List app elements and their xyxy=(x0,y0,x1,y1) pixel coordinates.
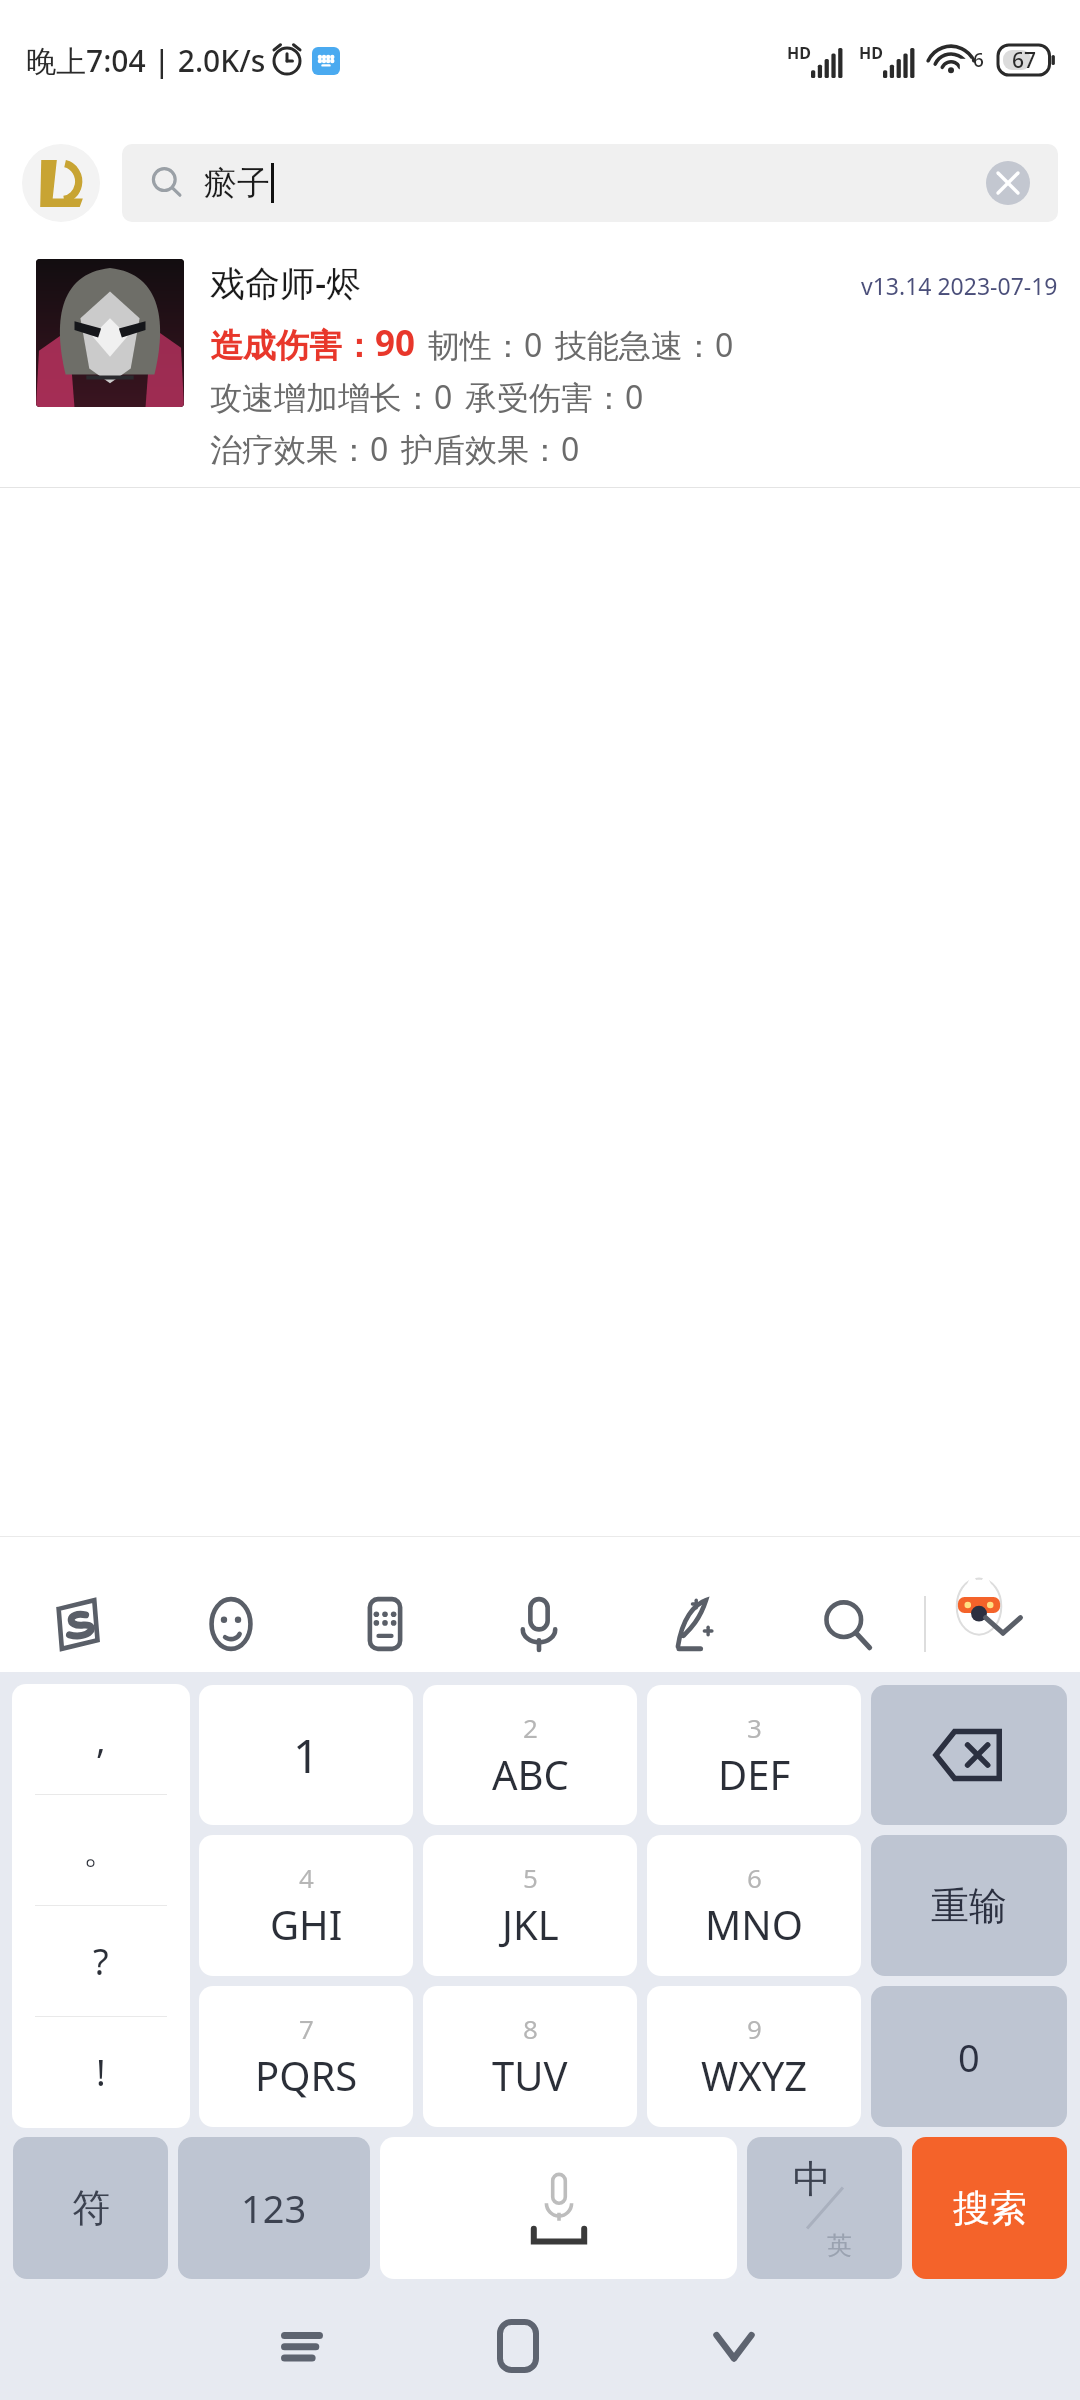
button[interactable]: 瘀子 xyxy=(122,144,1058,222)
staticText: 6 xyxy=(973,47,984,73)
staticText: v13.14 2023-07-19 xyxy=(861,270,1058,301)
button[interactable]: Search xyxy=(770,1588,924,1660)
button[interactable]: 9 xyxy=(647,1986,861,2127)
button[interactable]: 0 xyxy=(871,1986,1067,2127)
staticText: ! xyxy=(96,2048,106,2097)
staticText: 1 xyxy=(293,1724,320,1787)
staticText: 符 xyxy=(72,2184,110,2232)
staticText: 67 xyxy=(1012,46,1037,75)
button[interactable]: Keyboard layout xyxy=(308,1588,462,1660)
staticText: ? xyxy=(93,1937,109,1986)
staticText: TUV xyxy=(492,2048,568,2102)
staticText: 6 xyxy=(747,1860,762,1895)
staticText: 治疗效果：0 xyxy=(210,427,389,471)
button[interactable]: 8 xyxy=(423,1986,637,2127)
button[interactable]: 搜索 xyxy=(912,2137,1067,2279)
button[interactable]: Profile xyxy=(22,144,100,222)
staticText: 中 xyxy=(793,2155,831,2203)
button[interactable]: Space xyxy=(380,2137,737,2279)
button[interactable]: 1 xyxy=(199,1685,413,1825)
staticText: MNO xyxy=(705,1897,803,1951)
staticText: 重输 xyxy=(931,1882,1007,1930)
button[interactable]: 2 xyxy=(423,1685,637,1825)
staticText: 3 xyxy=(747,1710,762,1745)
button[interactable]: Back xyxy=(626,2292,842,2400)
button[interactable]: 5 xyxy=(423,1835,637,1976)
staticText: 2 xyxy=(523,1710,538,1745)
button[interactable]: Home xyxy=(410,2292,626,2400)
button[interactable]: 6 xyxy=(647,1835,861,1976)
staticText: 护盾效果：0 xyxy=(401,427,580,471)
button[interactable]: 7 xyxy=(199,1986,413,2127)
staticText: 晚上7:04 | 2.0K/s xyxy=(26,40,266,81)
staticText: ABC xyxy=(492,1747,569,1801)
staticText: GHI xyxy=(270,1897,343,1951)
button[interactable]: 4 xyxy=(199,1835,413,1976)
button[interactable]: Hide keyboard xyxy=(926,1588,1080,1660)
staticText: 8 xyxy=(523,2011,538,2046)
button[interactable]: 3 xyxy=(647,1685,861,1825)
staticText: 技能急速：0 xyxy=(555,323,734,367)
staticText: 7 xyxy=(299,2011,314,2046)
button[interactable]: 符 xyxy=(13,2137,168,2279)
staticText: 攻速增加增长：0 xyxy=(210,375,453,419)
staticText: 搜索 xyxy=(953,2185,1027,2232)
staticText: 0 xyxy=(958,2031,980,2083)
staticText: 9 xyxy=(747,2011,762,2046)
staticText: DEF xyxy=(718,1747,791,1801)
button[interactable]: 123 xyxy=(178,2137,370,2279)
button[interactable]: Emoji xyxy=(154,1588,308,1660)
button[interactable]: Handwriting xyxy=(616,1588,770,1660)
button[interactable]: Clear xyxy=(986,161,1030,205)
staticText: 5 xyxy=(523,1860,538,1895)
button[interactable]: Voice input xyxy=(462,1588,616,1660)
button[interactable]: Backspace xyxy=(871,1685,1067,1825)
staticText: , xyxy=(96,1715,106,1764)
staticText: 英 xyxy=(827,2230,852,2261)
button[interactable]: 。 xyxy=(12,1795,190,1906)
staticText: 4 xyxy=(299,1860,314,1895)
button[interactable]: , xyxy=(12,1684,190,1795)
button[interactable]: ! xyxy=(12,2017,190,2128)
staticText: 90 xyxy=(375,319,416,367)
staticText: HD xyxy=(787,42,811,64)
button[interactable]: ? xyxy=(12,1906,190,2017)
button[interactable]: 戏命师-烬 xyxy=(0,245,1080,487)
button[interactable]: Chinese English toggle xyxy=(747,2137,902,2279)
staticText: PQRS xyxy=(255,2048,358,2102)
button[interactable]: Recents xyxy=(194,2292,410,2400)
staticText: WXYZ xyxy=(701,2048,808,2102)
button[interactable]: Assistant xyxy=(946,1572,1012,1638)
button[interactable]: Sogou xyxy=(0,1588,154,1660)
staticText: 韧性：0 xyxy=(428,323,543,367)
staticText: 瘀子 xyxy=(204,162,270,204)
staticText: 承受伤害：0 xyxy=(465,375,644,419)
staticText: HD xyxy=(859,42,883,64)
staticText: JKL xyxy=(502,1897,559,1951)
staticText: 戏命师-烬 xyxy=(210,259,362,307)
staticText: 123 xyxy=(241,2182,307,2234)
staticText: 造成伤害： xyxy=(210,325,375,367)
button[interactable]: 重输 xyxy=(871,1835,1067,1976)
staticText: 。 xyxy=(83,1828,119,1873)
